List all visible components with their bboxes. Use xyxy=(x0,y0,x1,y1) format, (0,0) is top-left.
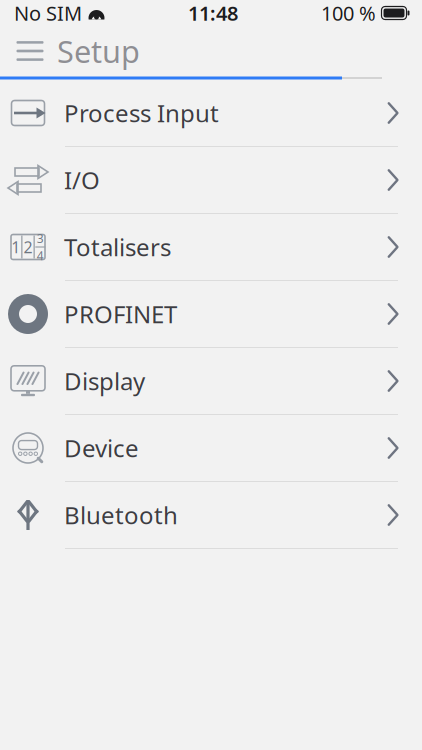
button[interactable]: 1 xyxy=(0,214,422,281)
staticText: No SIM xyxy=(14,0,82,26)
staticText: Process Input xyxy=(64,97,219,129)
staticText: Setup xyxy=(57,31,140,71)
staticText: 2 xyxy=(23,236,32,258)
button[interactable]: Menu xyxy=(8,29,52,73)
button[interactable]: Device xyxy=(0,415,422,482)
staticText: 4 xyxy=(37,248,44,263)
button[interactable]: Display xyxy=(0,348,422,415)
staticText: Bluetooth xyxy=(64,499,178,531)
button[interactable]: PROFINET xyxy=(0,281,422,348)
button[interactable]: Bluetooth xyxy=(0,482,422,549)
staticText: Totalisers xyxy=(64,231,171,263)
staticText: Device xyxy=(64,432,139,464)
staticText: I/O xyxy=(64,164,100,196)
staticText: 11:48 xyxy=(188,0,238,26)
staticText: 1 xyxy=(11,236,20,258)
staticText: 100 % xyxy=(321,0,376,26)
staticText: 3 xyxy=(37,230,44,246)
staticText: Display xyxy=(64,365,145,397)
button[interactable]: I/O xyxy=(0,147,422,214)
button[interactable]: Process Input xyxy=(0,80,422,147)
staticText: PROFINET xyxy=(64,298,177,330)
